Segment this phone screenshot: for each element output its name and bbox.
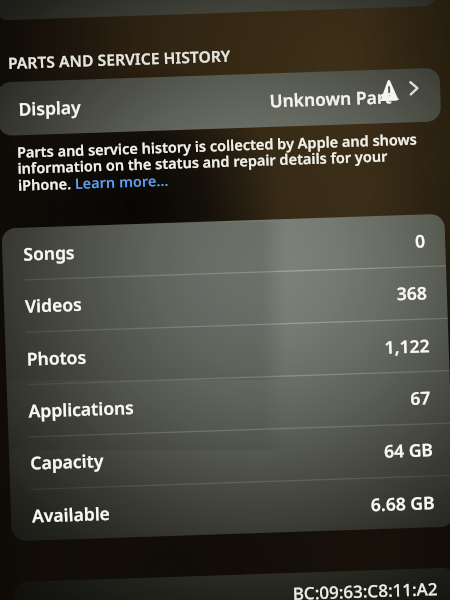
staticText: Unknown Part <box>269 84 393 112</box>
staticText: Videos <box>25 292 82 318</box>
button[interactable]: Applications <box>7 371 450 437</box>
button[interactable]: Available <box>10 475 450 542</box>
staticText: Capacity <box>30 448 105 474</box>
staticText: 67 <box>410 385 432 410</box>
staticText: 368 <box>396 280 428 305</box>
button[interactable]: Photos <box>5 319 449 385</box>
staticText: Display <box>18 95 82 121</box>
button[interactable]: Videos <box>3 266 448 332</box>
button[interactable]: Capacity <box>8 423 450 489</box>
staticText: BC:09:63:C8:11:A2 <box>292 577 438 600</box>
staticText: 6.68 GB <box>370 490 435 516</box>
staticText: 0 <box>415 228 426 253</box>
staticText: Applications <box>28 395 135 423</box>
staticText: 1,122 <box>384 333 430 359</box>
staticText: Photos <box>26 345 87 371</box>
staticText: Available <box>32 501 110 527</box>
staticText: 64 GB <box>384 437 433 463</box>
button[interactable]: Songs <box>1 214 446 280</box>
staticText: Songs <box>23 240 76 266</box>
staticText: Parts and service history is collected b… <box>17 128 434 196</box>
staticText: PARTS AND SERVICE HISTORY <box>8 45 231 73</box>
button[interactable]: Display <box>0 68 441 136</box>
